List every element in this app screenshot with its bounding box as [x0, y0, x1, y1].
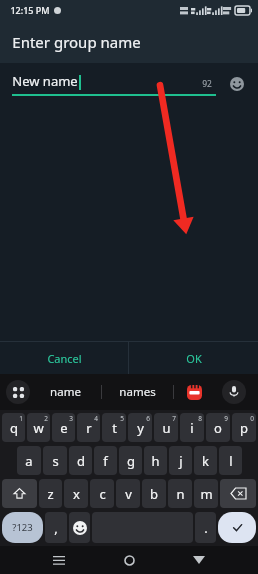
button[interactable]: .: [195, 512, 216, 543]
staticText: z: [47, 485, 54, 503]
staticText: ,: [54, 519, 58, 537]
staticText: w: [33, 419, 44, 437]
button[interactable]: ?123: [2, 512, 43, 543]
button[interactable]: Voice input: [214, 374, 254, 410]
button[interactable]: Emoji: [224, 71, 250, 97]
staticText: p: [240, 419, 248, 437]
button[interactable]: r: [77, 413, 100, 442]
staticText: i: [190, 419, 194, 437]
staticText: 4: [94, 414, 98, 423]
staticText: t: [112, 419, 117, 437]
button[interactable]: Toolbar: [6, 380, 30, 404]
button[interactable]: n: [168, 479, 192, 508]
staticText: OK: [186, 351, 202, 366]
staticText: q: [10, 419, 18, 437]
staticText: n: [176, 485, 185, 503]
staticText: d: [77, 452, 85, 470]
button[interactable]: p: [232, 413, 256, 442]
staticText: f: [103, 452, 108, 470]
staticText: 9: [224, 414, 228, 423]
button[interactable]: Stickers: [174, 374, 214, 410]
staticText: m: [200, 485, 213, 503]
staticText: Cancel: [47, 351, 82, 366]
staticText: 6: [146, 414, 150, 423]
staticText: 5: [120, 414, 124, 423]
button[interactable]: OK: [129, 342, 258, 374]
staticText: 3: [69, 414, 73, 423]
button[interactable]: Shift: [2, 479, 37, 508]
staticText: x: [73, 485, 80, 503]
button[interactable]: f: [94, 446, 117, 475]
staticText: o: [214, 419, 222, 437]
button[interactable]: ,: [45, 512, 67, 543]
staticText: j: [179, 452, 183, 470]
staticText: v: [125, 485, 132, 503]
button[interactable]: e: [52, 413, 75, 442]
staticText: names: [119, 384, 156, 400]
button[interactable]: l: [219, 446, 242, 475]
button[interactable]: u: [154, 413, 178, 442]
button[interactable]: t: [102, 413, 126, 442]
button[interactable]: Back: [184, 546, 214, 574]
staticText: 0: [250, 414, 254, 423]
button[interactable]: names: [102, 374, 173, 410]
button[interactable]: g: [119, 446, 142, 475]
staticText: New name: [12, 72, 78, 90]
button[interactable]: name: [30, 374, 101, 410]
staticText: y: [137, 419, 144, 437]
button[interactable]: c: [90, 479, 114, 508]
staticText: c: [99, 485, 106, 503]
button[interactable]: x: [64, 479, 88, 508]
button[interactable]: w: [27, 413, 50, 442]
staticText: .: [204, 519, 208, 537]
staticText: 12:15 PM: [10, 4, 50, 16]
button[interactable]: a: [17, 446, 41, 475]
button[interactable]: k: [194, 446, 217, 475]
staticText: k: [202, 452, 209, 470]
staticText: s: [52, 452, 59, 470]
staticText: 1: [19, 414, 23, 423]
button[interactable]: q: [2, 413, 25, 442]
button[interactable]: b: [142, 479, 166, 508]
staticText: 92: [202, 78, 212, 90]
button[interactable]: v: [116, 479, 140, 508]
button[interactable]: d: [69, 446, 92, 475]
button[interactable]: Home: [114, 546, 144, 574]
staticText: ?123: [12, 521, 33, 534]
staticText: 2: [44, 414, 48, 423]
button[interactable]: h: [144, 446, 167, 475]
button[interactable]: Cancel: [0, 342, 128, 374]
staticText: 7: [172, 414, 176, 423]
button[interactable]: y: [128, 413, 152, 442]
button[interactable]: i: [180, 413, 204, 442]
staticText: h: [151, 452, 160, 470]
staticText: 8: [198, 414, 202, 423]
button[interactable]: Recents: [44, 546, 74, 574]
staticText: name: [50, 384, 81, 400]
staticText: b: [150, 485, 158, 503]
staticText: l: [229, 452, 233, 470]
button[interactable]: Backspace: [220, 479, 256, 508]
staticText: a: [25, 452, 33, 470]
button[interactable]: Enter: [218, 512, 256, 543]
button[interactable]: Emoji: [69, 512, 90, 543]
button[interactable]: s: [43, 446, 67, 475]
button[interactable]: j: [169, 446, 192, 475]
staticText: g: [127, 452, 135, 470]
staticText: e: [60, 419, 68, 437]
button[interactable]: m: [194, 479, 218, 508]
button[interactable]: o: [206, 413, 230, 442]
staticText: u: [162, 419, 171, 437]
button[interactable]: z: [39, 479, 62, 508]
staticText: r: [86, 419, 92, 437]
staticText: Enter group name: [12, 32, 141, 52]
